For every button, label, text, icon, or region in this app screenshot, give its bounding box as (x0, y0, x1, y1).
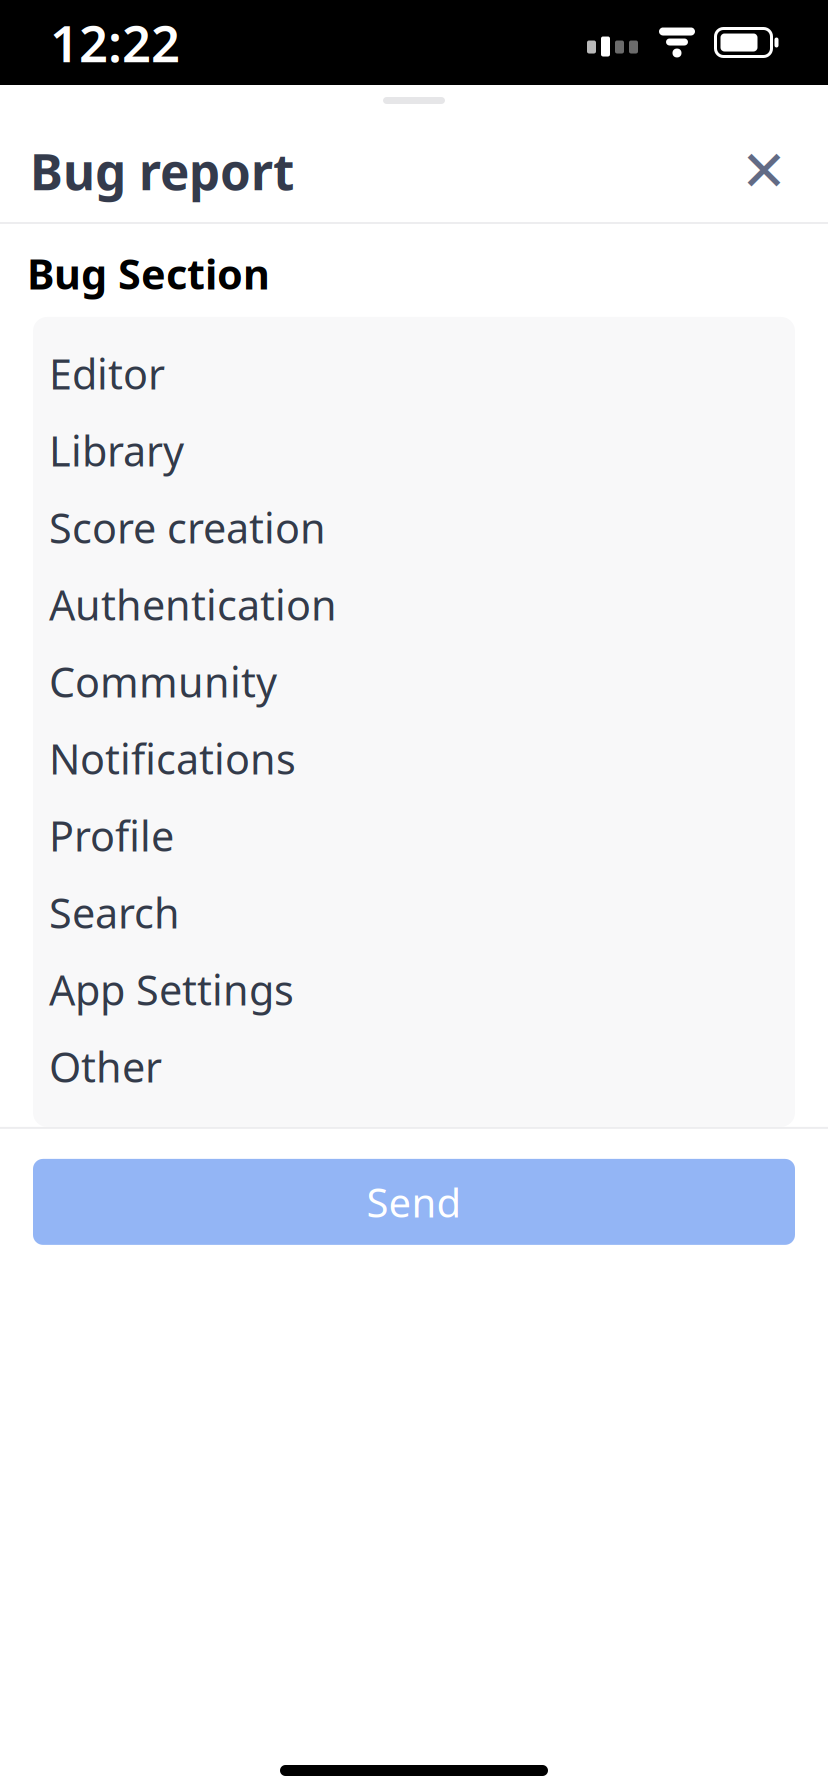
button[interactable]: Score creation (33, 489, 795, 566)
staticText: Community (49, 654, 277, 709)
staticText: Authentication (49, 577, 337, 632)
staticText: Search (49, 885, 180, 940)
staticText: Bug report (30, 138, 294, 204)
staticText: Bug Section (27, 246, 270, 301)
staticText: 12:22 (50, 9, 180, 76)
staticText: App Settings (49, 962, 294, 1017)
staticText: Profile (49, 808, 174, 863)
staticText: Other (49, 1039, 162, 1094)
staticText: Send (366, 1175, 461, 1228)
button[interactable]: Profile (33, 797, 795, 874)
button[interactable]: Send (33, 1159, 795, 1245)
button[interactable]: Editor (33, 335, 795, 412)
button[interactable]: Other (33, 1028, 795, 1105)
staticText: Editor (49, 346, 165, 401)
staticText: Score creation (49, 500, 326, 555)
button[interactable]: Library (33, 412, 795, 489)
staticText: Notifications (49, 731, 296, 786)
staticText: Library (49, 423, 184, 478)
button[interactable]: Community (33, 643, 795, 720)
button[interactable]: App Settings (33, 951, 795, 1028)
button[interactable]: Notifications (33, 720, 795, 797)
button[interactable]: Close (726, 133, 802, 209)
button[interactable]: Search (33, 874, 795, 951)
staticText: ✕ (740, 139, 787, 203)
button[interactable]: Authentication (33, 566, 795, 643)
